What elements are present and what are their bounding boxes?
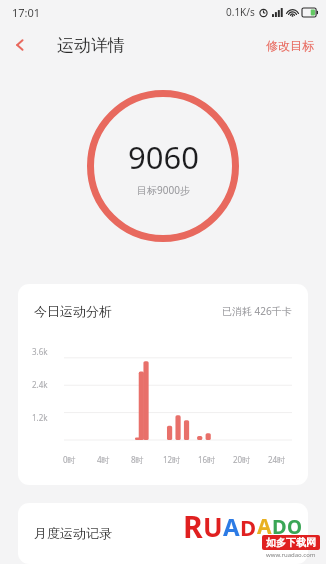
- button[interactable]: 9060: [87, 90, 239, 242]
- staticText: R: [183, 506, 203, 547]
- button[interactable]: 修改目标: [254, 30, 326, 61]
- staticText: 20时: [233, 454, 251, 465]
- staticText: 修改目标: [266, 38, 314, 53]
- staticText: 17:01: [12, 5, 41, 20]
- button[interactable]: Back: [0, 25, 40, 65]
- staticText: 12时: [163, 454, 181, 465]
- staticText: A: [257, 512, 272, 541]
- staticText: D: [272, 513, 287, 540]
- staticText: www.ruadao.com: [266, 551, 316, 559]
- staticText: 0时: [63, 454, 76, 465]
- staticText: 0.1K/s: [226, 5, 255, 19]
- staticText: D: [240, 512, 257, 542]
- staticText: O: [287, 514, 303, 540]
- staticText: 目标9000步: [137, 183, 190, 197]
- staticText: 月度运动记录: [34, 525, 112, 541]
- button[interactable]: 今日运动分析: [18, 284, 308, 485]
- staticText: 1.2k: [32, 412, 48, 423]
- staticText: U: [203, 509, 223, 544]
- staticText: 8时: [131, 454, 144, 465]
- button[interactable]: 月度运动记录: [18, 503, 308, 564]
- staticText: 24时: [268, 454, 286, 465]
- staticText: 如多下载网: [266, 536, 316, 549]
- staticText: 16时: [198, 454, 216, 465]
- staticText: 2.4k: [32, 379, 48, 390]
- staticText: 4时: [97, 454, 110, 465]
- staticText: 3.6k: [32, 346, 48, 357]
- staticText: 9060: [128, 136, 199, 178]
- staticText: 已消耗 426千卡: [222, 304, 292, 318]
- staticText: 运动详情: [57, 35, 125, 56]
- staticText: 今日运动分析: [34, 303, 112, 319]
- staticText: A: [223, 510, 240, 543]
